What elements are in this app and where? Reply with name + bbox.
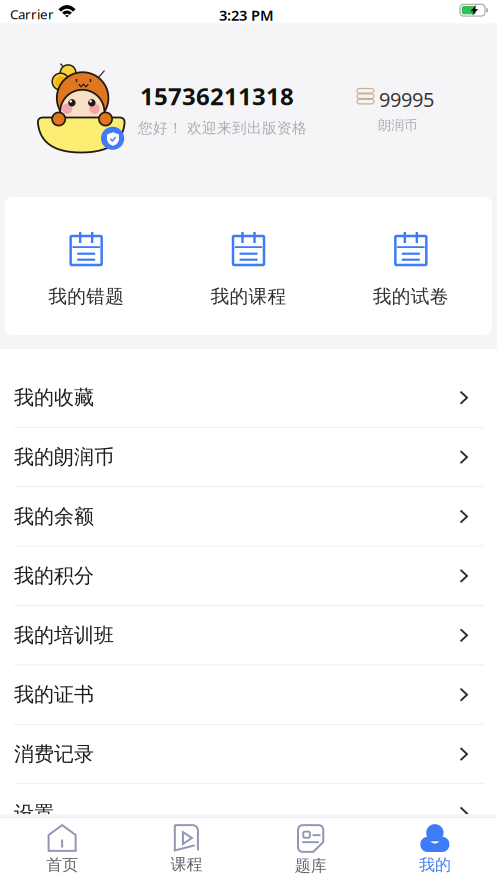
staticText: 我的 [419, 855, 451, 875]
staticText: 3:23 PM [219, 5, 274, 25]
staticText: 99995 [379, 86, 434, 113]
button[interactable]: 首页 [0, 818, 124, 883]
button[interactable]: 题库 [248, 818, 373, 883]
button[interactable]: 我的余额 [0, 487, 497, 547]
staticText: 题库 [295, 856, 327, 876]
button[interactable]: 我的收藏 [0, 368, 497, 428]
staticText: 朗润币 [378, 117, 417, 133]
staticText: 消费记录 [14, 742, 94, 766]
staticText: 我的证书 [14, 682, 94, 707]
button[interactable]: 课程 [124, 818, 248, 883]
button[interactable]: 我的证书 [0, 665, 497, 725]
staticText: 课程 [170, 854, 202, 874]
staticText: 我的收藏 [14, 385, 94, 410]
staticText: 我的朗润币 [14, 445, 114, 469]
button[interactable]: 消费记录 [0, 725, 497, 784]
button[interactable]: 我的课程 [167, 197, 330, 335]
button[interactable]: 我的培训班 [0, 606, 497, 665]
staticText: 我的培训班 [14, 623, 114, 648]
button[interactable]: 我的试卷 [330, 197, 492, 335]
staticText: 设置 [14, 801, 54, 826]
button[interactable]: 我的 [373, 818, 497, 883]
staticText: 我的积分 [14, 564, 94, 588]
staticText: 您好！ 欢迎来到出版资格 [138, 119, 307, 137]
staticText: 我的错题 [48, 285, 124, 308]
staticText: 我的课程 [210, 285, 286, 308]
staticText: 我的试卷 [373, 285, 449, 308]
button[interactable]: 我的错题 [5, 197, 167, 335]
button[interactable]: 我的朗润币 [0, 428, 497, 487]
staticText: 首页 [46, 855, 78, 875]
staticText: 我的余额 [14, 504, 94, 529]
staticText: 15736211318 [140, 80, 294, 112]
button[interactable]: 设置 [0, 784, 497, 844]
button[interactable]: 我的积分 [0, 547, 497, 606]
staticText: Carrier [10, 5, 54, 23]
